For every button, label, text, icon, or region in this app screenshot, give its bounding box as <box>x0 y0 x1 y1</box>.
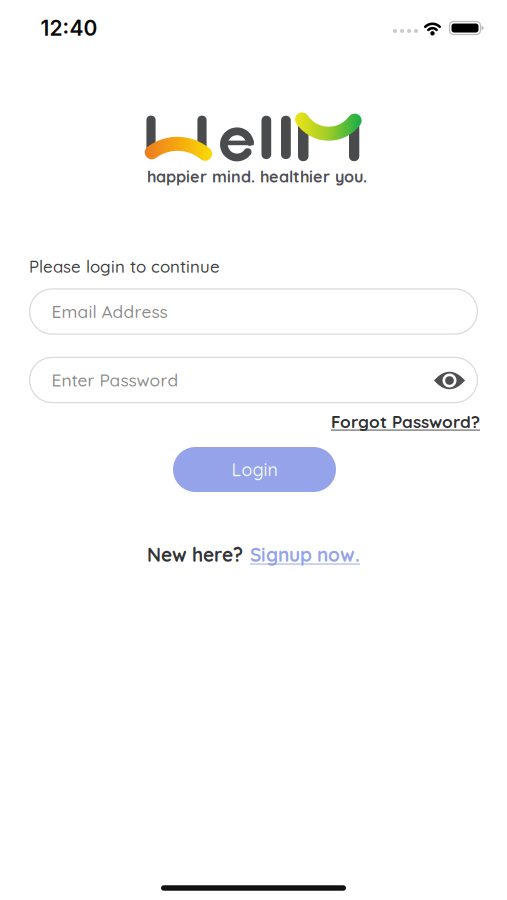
button[interactable]: Enter Password <box>29 357 478 403</box>
button[interactable]: Signup now. <box>250 543 360 566</box>
button[interactable]: Email Address <box>29 288 478 335</box>
staticText: New here? <box>147 543 243 566</box>
staticText: 12:40 <box>40 15 97 41</box>
staticText: Please login to continue <box>29 256 220 277</box>
staticText: happier mind. healthier you. <box>147 166 367 187</box>
staticText: Login <box>231 458 277 481</box>
button[interactable]: Show password <box>432 369 466 391</box>
button[interactable]: Forgot Password? <box>331 411 480 432</box>
staticText: Forgot Password? <box>331 411 480 432</box>
staticText: Enter Password <box>51 369 178 391</box>
button[interactable]: Login <box>173 447 336 492</box>
staticText: Signup now. <box>250 543 360 566</box>
staticText: Email Address <box>51 301 167 322</box>
